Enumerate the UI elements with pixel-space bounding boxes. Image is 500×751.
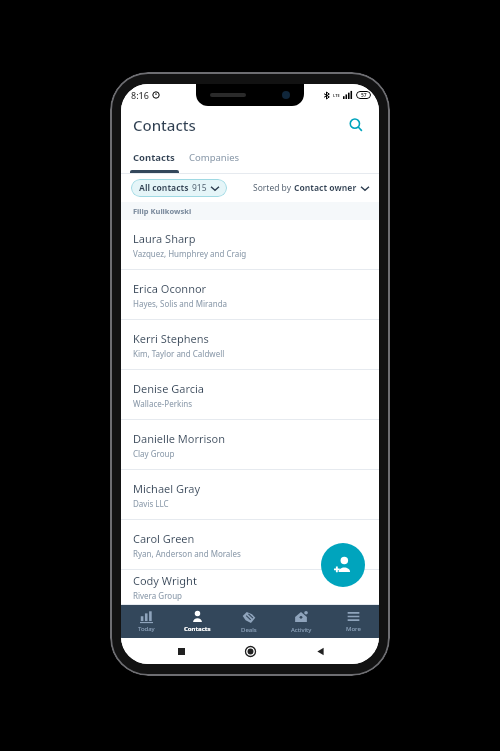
button[interactable]: Add contact (321, 543, 365, 587)
staticText: More (346, 625, 361, 633)
button[interactable]: Sorted by (253, 179, 369, 197)
staticText: Carol Green (133, 531, 195, 546)
button[interactable]: Laura Sharp (121, 220, 379, 270)
staticText: Activity (291, 626, 312, 634)
staticText: 8:16 (131, 89, 149, 101)
staticText: All contacts (139, 182, 189, 194)
staticText: Laura Sharp (133, 231, 196, 246)
staticText: Clay Group (133, 448, 175, 459)
button[interactable]: Carol Green (121, 520, 379, 570)
staticText: Denise Garcia (133, 381, 204, 396)
staticText: Deals (241, 626, 257, 634)
staticText: Rivera Group (133, 590, 182, 601)
button[interactable]: Companies (189, 144, 240, 170)
button[interactable]: Today (121, 605, 172, 638)
staticText: Contacts (133, 151, 175, 164)
button[interactable]: Home (240, 641, 260, 661)
staticText: Ryan, Anderson and Morales (133, 548, 241, 559)
staticText: Vazquez, Humphrey and Craig (133, 248, 247, 259)
staticText: Contacts (184, 625, 211, 633)
button[interactable]: Activity (275, 605, 327, 638)
button[interactable]: Contacts (133, 144, 175, 170)
staticText: 915 (192, 182, 207, 194)
staticText: Today (138, 625, 155, 633)
button[interactable]: Deals (223, 605, 275, 638)
staticText: Sorted by (253, 182, 294, 194)
staticText: Contact owner (294, 182, 357, 194)
button[interactable]: Cody Wright (121, 570, 379, 605)
staticText: Davis LLC (133, 498, 169, 509)
staticText: LTE (333, 93, 340, 98)
staticText: Companies (189, 151, 240, 164)
staticText: Wallace-Perkins (133, 398, 193, 409)
staticText: Hayes, Solis and Miranda (133, 298, 228, 309)
staticText: Kim, Taylor and Caldwell (133, 348, 225, 359)
button[interactable]: Recents (171, 641, 191, 661)
button[interactable]: Kerri Stephens (121, 320, 379, 370)
button[interactable]: Back (310, 641, 330, 661)
button[interactable]: All contacts (131, 179, 227, 197)
button[interactable]: Danielle Morrison (121, 420, 379, 470)
staticText: Cody Wright (133, 573, 197, 588)
button[interactable]: More (327, 605, 379, 638)
staticText: Contacts (133, 115, 196, 135)
staticText: Filip Kulikowski (133, 206, 192, 216)
staticText: Kerri Stephens (133, 331, 209, 346)
button[interactable]: Search (343, 112, 369, 138)
staticText: Danielle Morrison (133, 431, 226, 446)
staticText: Michael Gray (133, 481, 201, 496)
button[interactable]: Erica Oconnor (121, 270, 379, 320)
button[interactable]: Denise Garcia (121, 370, 379, 420)
button[interactable]: Michael Gray (121, 470, 379, 520)
staticText: Erica Oconnor (133, 281, 207, 296)
staticText: 57 (361, 92, 367, 99)
button[interactable]: Contacts (172, 605, 223, 638)
